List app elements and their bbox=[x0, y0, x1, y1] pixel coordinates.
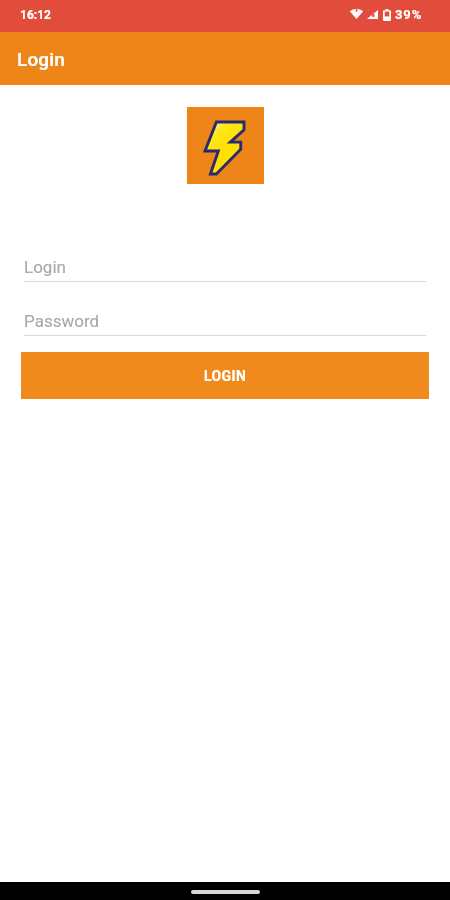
staticText: LOGIN bbox=[204, 368, 247, 384]
button[interactable]: LOGIN bbox=[21, 352, 429, 399]
staticText: 16:12 bbox=[20, 8, 51, 22]
button[interactable]: Password bbox=[24, 311, 426, 336]
staticText: Login bbox=[24, 257, 66, 277]
staticText: Login bbox=[17, 48, 65, 70]
staticText: Password bbox=[24, 311, 100, 331]
button[interactable]: Login bbox=[24, 257, 426, 282]
button[interactable]: Home bbox=[191, 890, 260, 894]
staticText: 39% bbox=[395, 7, 423, 22]
